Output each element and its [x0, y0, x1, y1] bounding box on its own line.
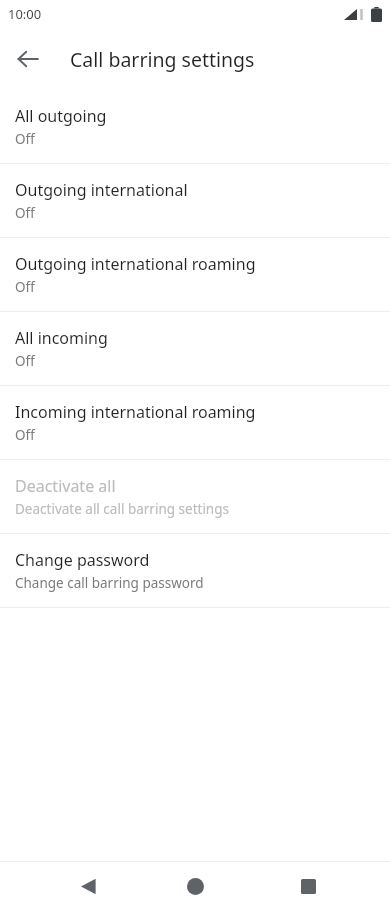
staticText: All incoming — [15, 327, 108, 349]
button[interactable]: All outgoing — [0, 90, 390, 163]
staticText: Outgoing international roaming — [15, 253, 256, 275]
staticText: Deactivate all call barring settings — [15, 500, 229, 518]
staticText: Incoming international roaming — [15, 401, 256, 423]
staticText: Off — [15, 426, 35, 444]
staticText: Call barring settings — [70, 46, 255, 73]
button[interactable]: Recent apps — [286, 864, 330, 908]
staticText: Off — [15, 352, 35, 370]
button[interactable]: Deactivate all — [0, 460, 390, 533]
staticText: Deactivate all — [15, 475, 116, 497]
staticText: Off — [15, 130, 35, 148]
staticText: Outgoing international — [15, 179, 188, 201]
staticText: Off — [15, 278, 35, 296]
staticText: Change call barring password — [15, 574, 204, 592]
button[interactable]: Back — [6, 37, 50, 81]
button[interactable]: Change password — [0, 534, 390, 607]
staticText: All outgoing — [15, 105, 107, 127]
button[interactable]: Outgoing international roaming — [0, 238, 390, 311]
button[interactable]: Incoming international roaming — [0, 386, 390, 459]
button[interactable]: Outgoing international — [0, 164, 390, 237]
button[interactable]: All incoming — [0, 312, 390, 385]
button[interactable]: Back — [66, 864, 110, 908]
button[interactable]: Home — [173, 864, 217, 908]
staticText: Change password — [15, 549, 150, 571]
staticText: 10:00 — [8, 5, 42, 23]
staticText: Off — [15, 204, 35, 222]
